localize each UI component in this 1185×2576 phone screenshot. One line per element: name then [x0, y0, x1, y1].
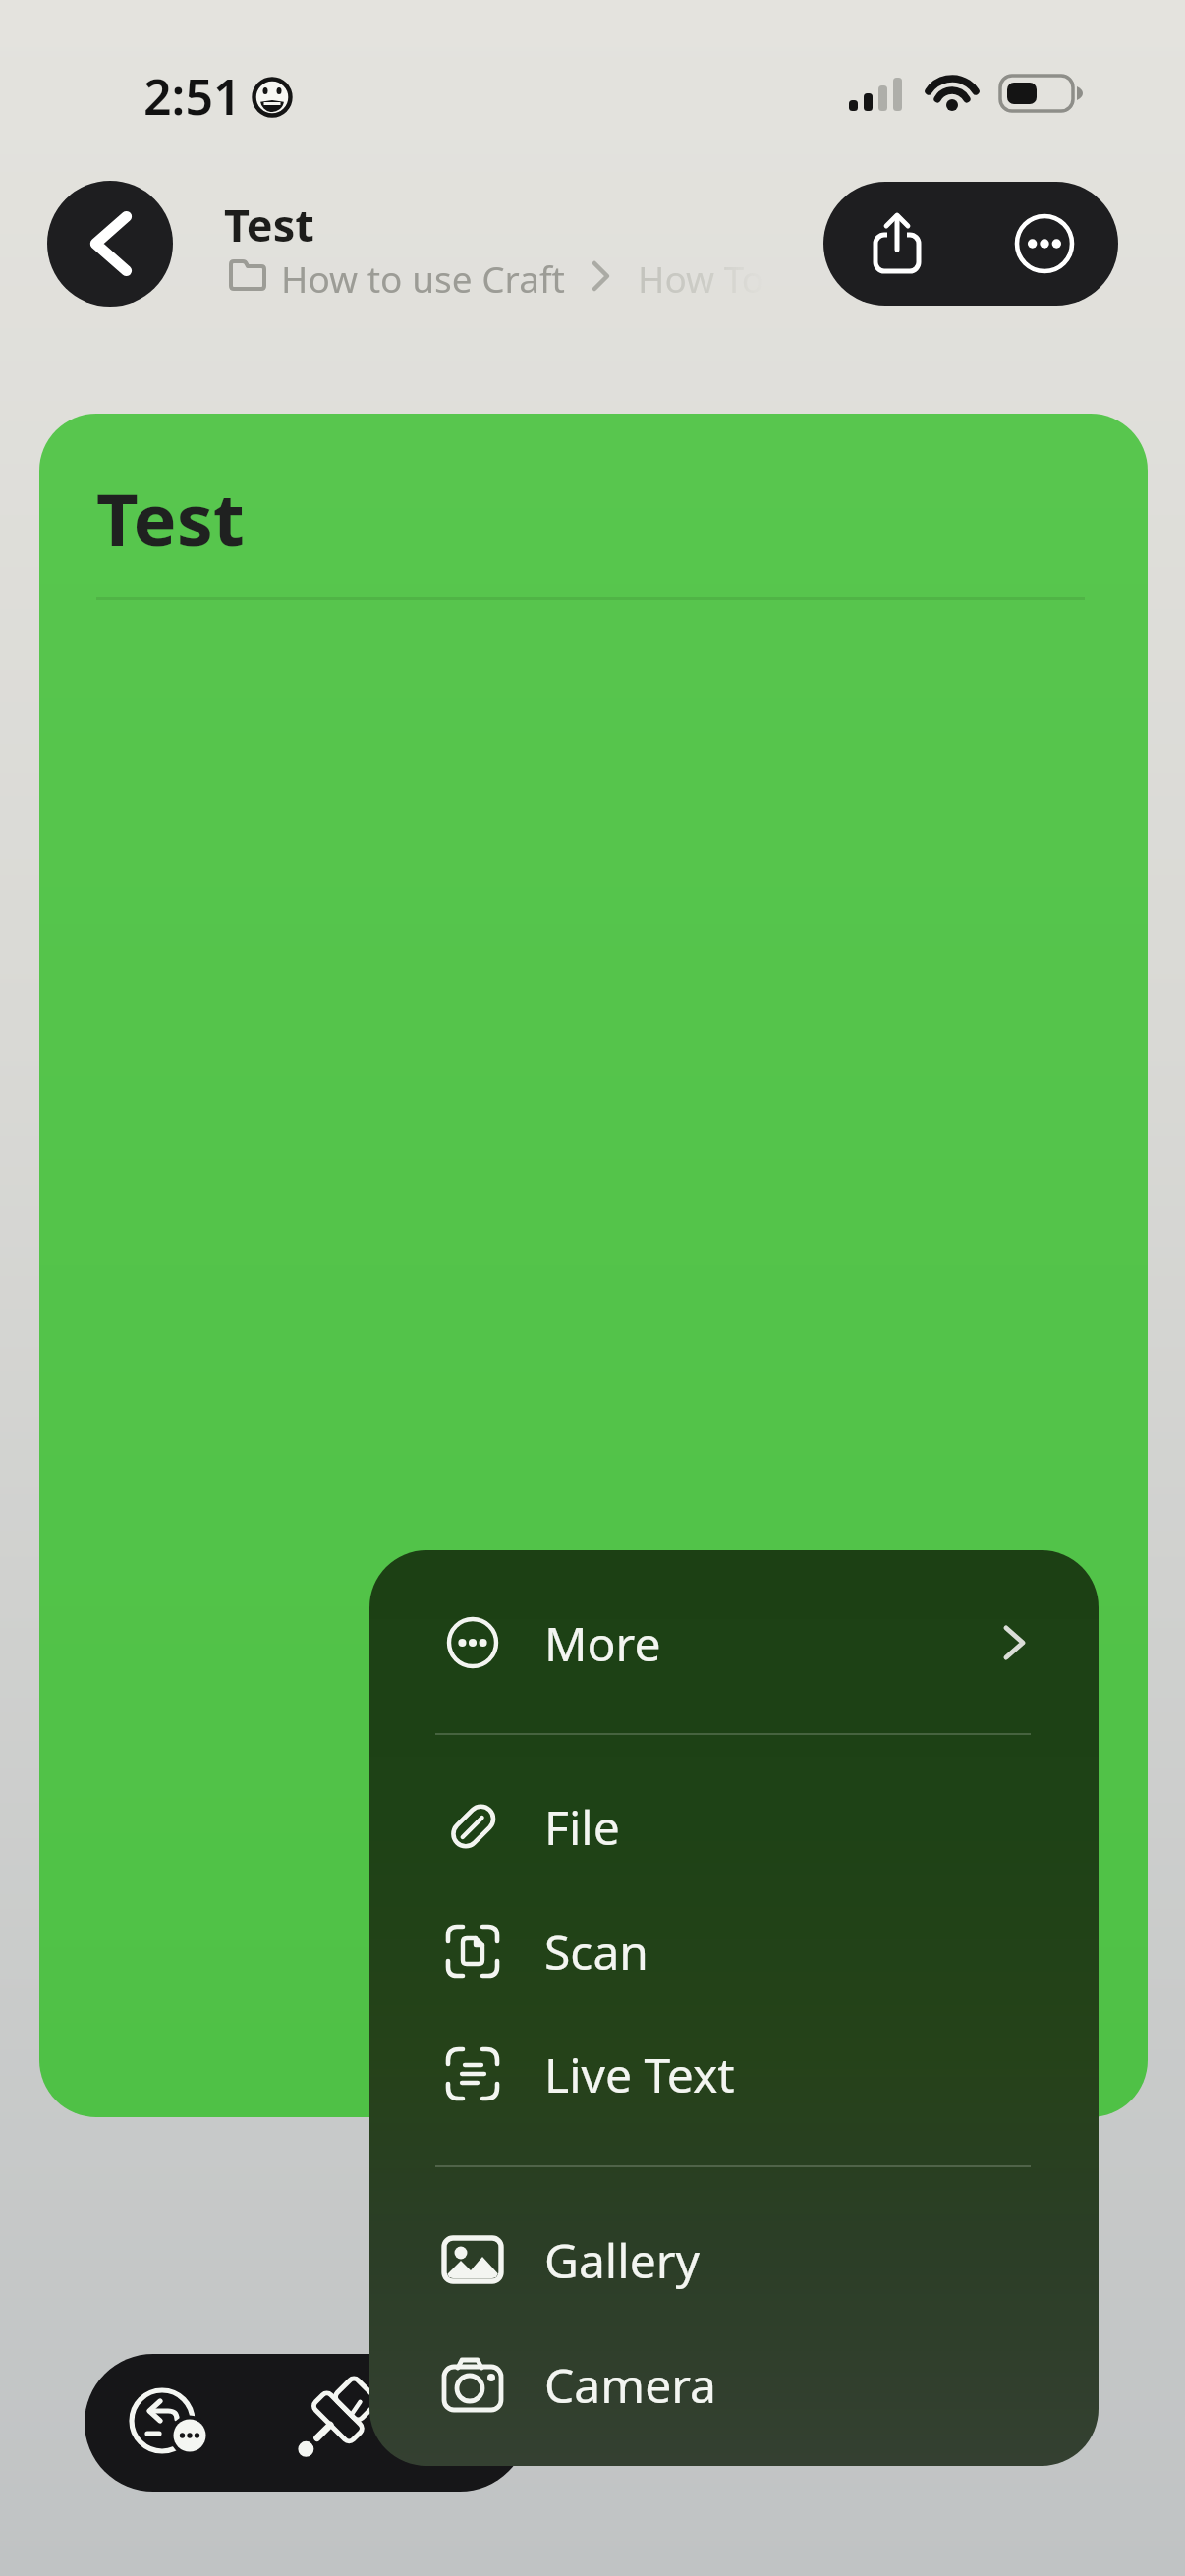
staticText: Test [96, 469, 245, 568]
staticText: File [544, 1795, 620, 1859]
button[interactable]: More [369, 1589, 1099, 1697]
staticText: How To [638, 253, 764, 299]
staticText: Gallery [544, 2228, 701, 2292]
staticText: Scan [544, 1920, 649, 1984]
button[interactable]: Gallery [369, 2206, 1099, 2314]
staticText: 2:51 [143, 63, 242, 130]
button[interactable] [85, 2354, 244, 2492]
button[interactable]: Camera [369, 2330, 1099, 2438]
button[interactable]: File [369, 1772, 1099, 1880]
button[interactable]: Live Text [369, 2020, 1099, 2128]
button[interactable]: Scan [369, 1897, 1099, 2005]
button[interactable] [244, 2354, 413, 2492]
button[interactable] [823, 182, 971, 306]
staticText: Test [224, 195, 314, 254]
button[interactable] [971, 182, 1118, 306]
staticText: How to use Craft [281, 253, 565, 299]
staticText: Live Text [544, 2043, 735, 2106]
button[interactable] [47, 181, 173, 307]
staticText: More [544, 1611, 661, 1675]
staticText: Camera [544, 2353, 717, 2417]
